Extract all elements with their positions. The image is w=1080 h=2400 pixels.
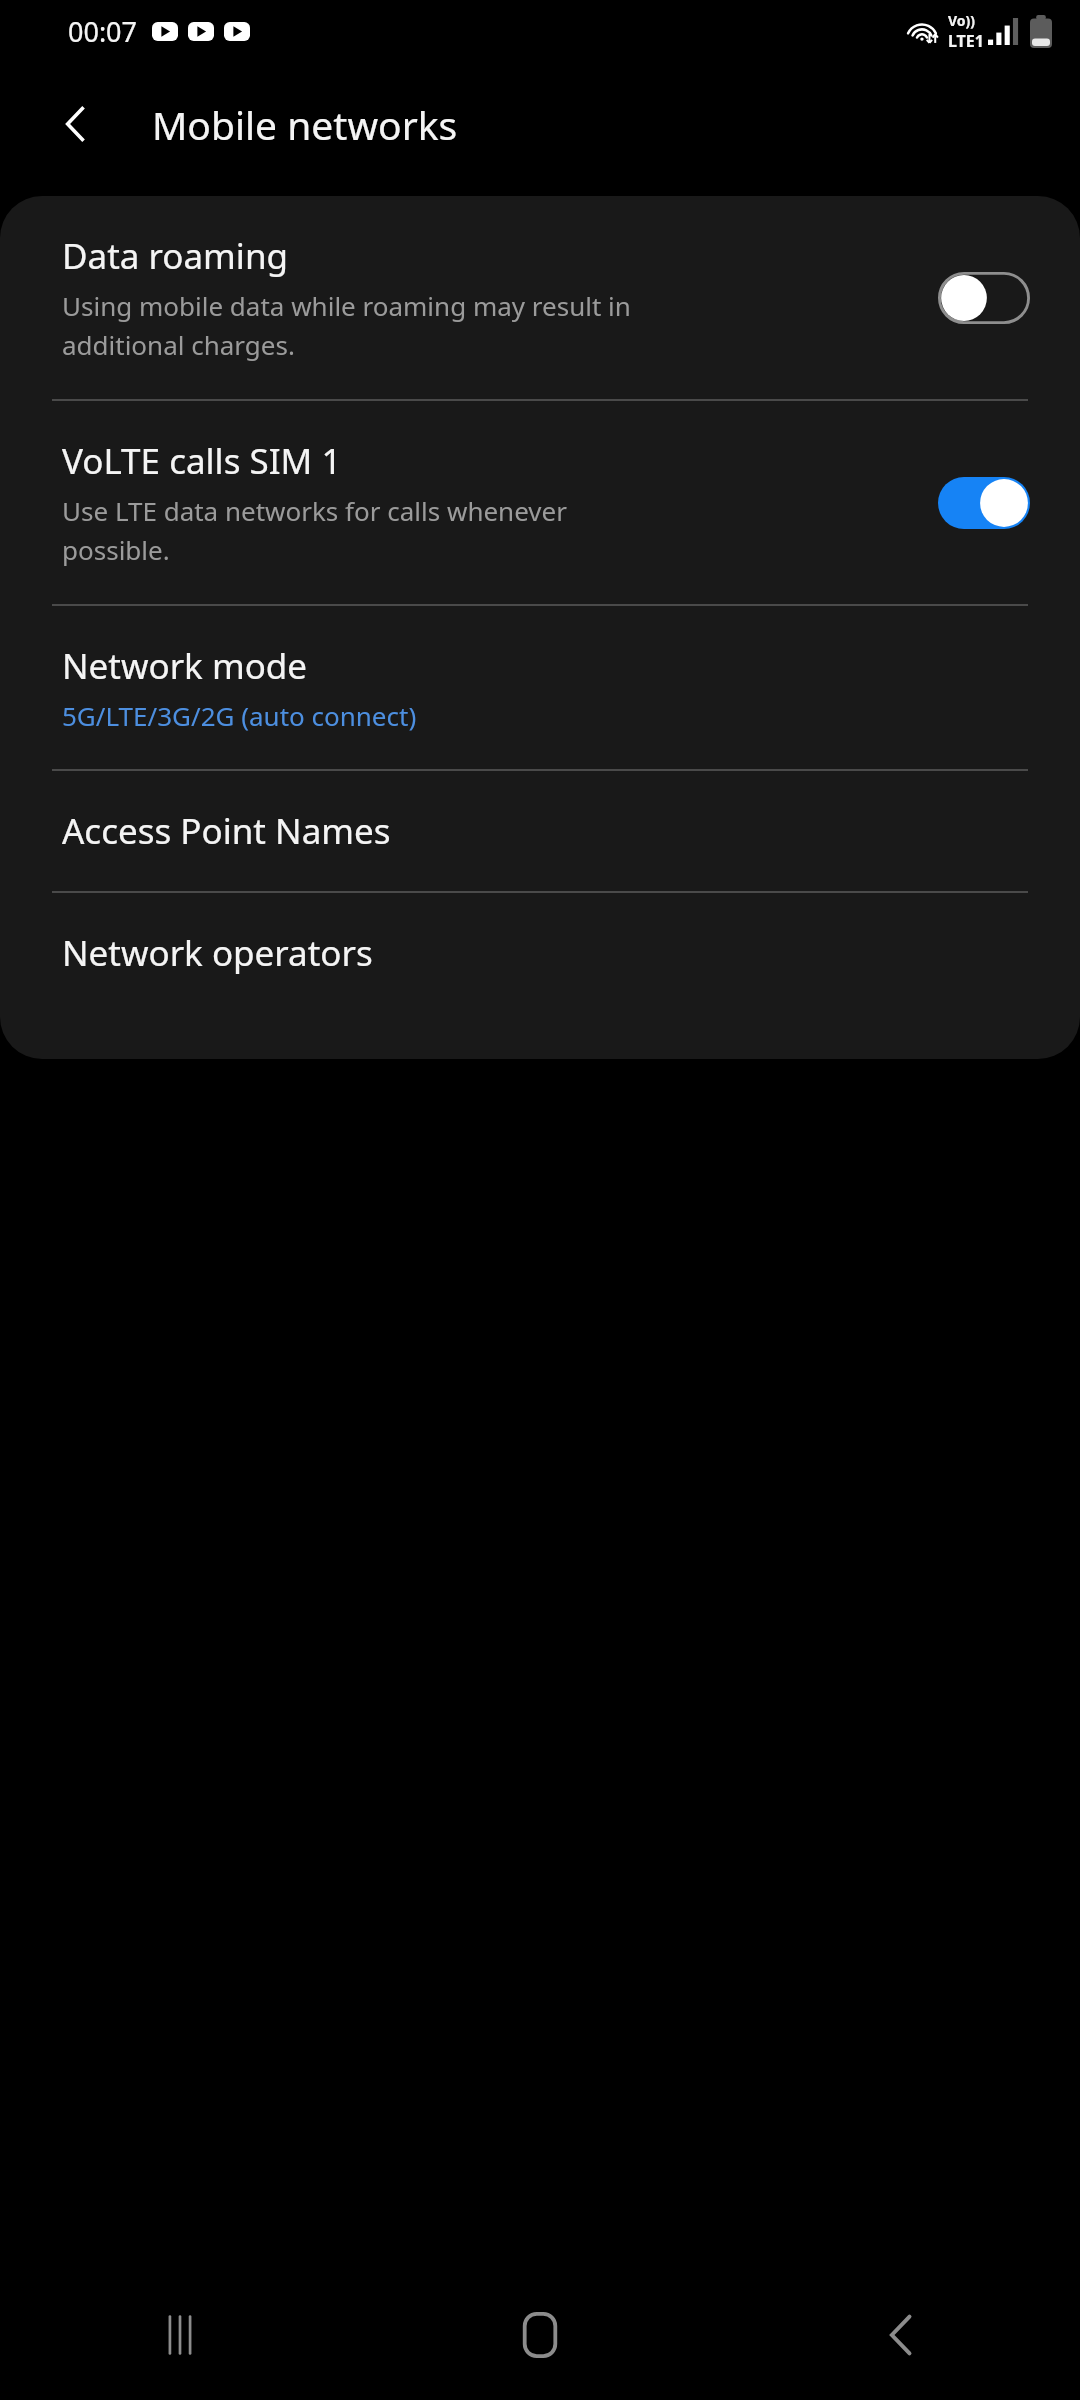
staticText: Access Point Names [62,807,391,855]
staticText: Vo)) [948,11,976,30]
staticText: Network mode [62,642,308,690]
staticText: 00:07 [68,13,138,50]
staticText: LTE1 [948,30,984,52]
staticText: Using mobile data while roaming may resu… [62,288,631,363]
button[interactable]: Back [720,2270,1080,2400]
staticText: Data roaming [62,232,289,280]
button[interactable]: VoLTE calls SIM 1 [0,401,1080,604]
button[interactable]: Home [360,2270,720,2400]
button[interactable]: Access Point Names [0,771,1080,891]
staticText: Network operators [62,929,373,977]
button[interactable]: Network operators [0,893,1080,1013]
staticText: 5G/LTE/3G/2G (auto connect) [62,698,417,733]
button[interactable]: Data roaming [0,196,1080,399]
button[interactable]: Back [38,86,114,162]
button[interactable]: Recent apps [0,2270,360,2400]
staticText: VoLTE calls SIM 1 [62,437,342,485]
button[interactable]: Off [938,272,1030,324]
button[interactable]: On [938,477,1030,529]
staticText: Mobile networks [152,98,458,151]
staticText: Use LTE data networks for calls whenever… [62,493,567,568]
button[interactable]: Network mode [0,606,1080,769]
